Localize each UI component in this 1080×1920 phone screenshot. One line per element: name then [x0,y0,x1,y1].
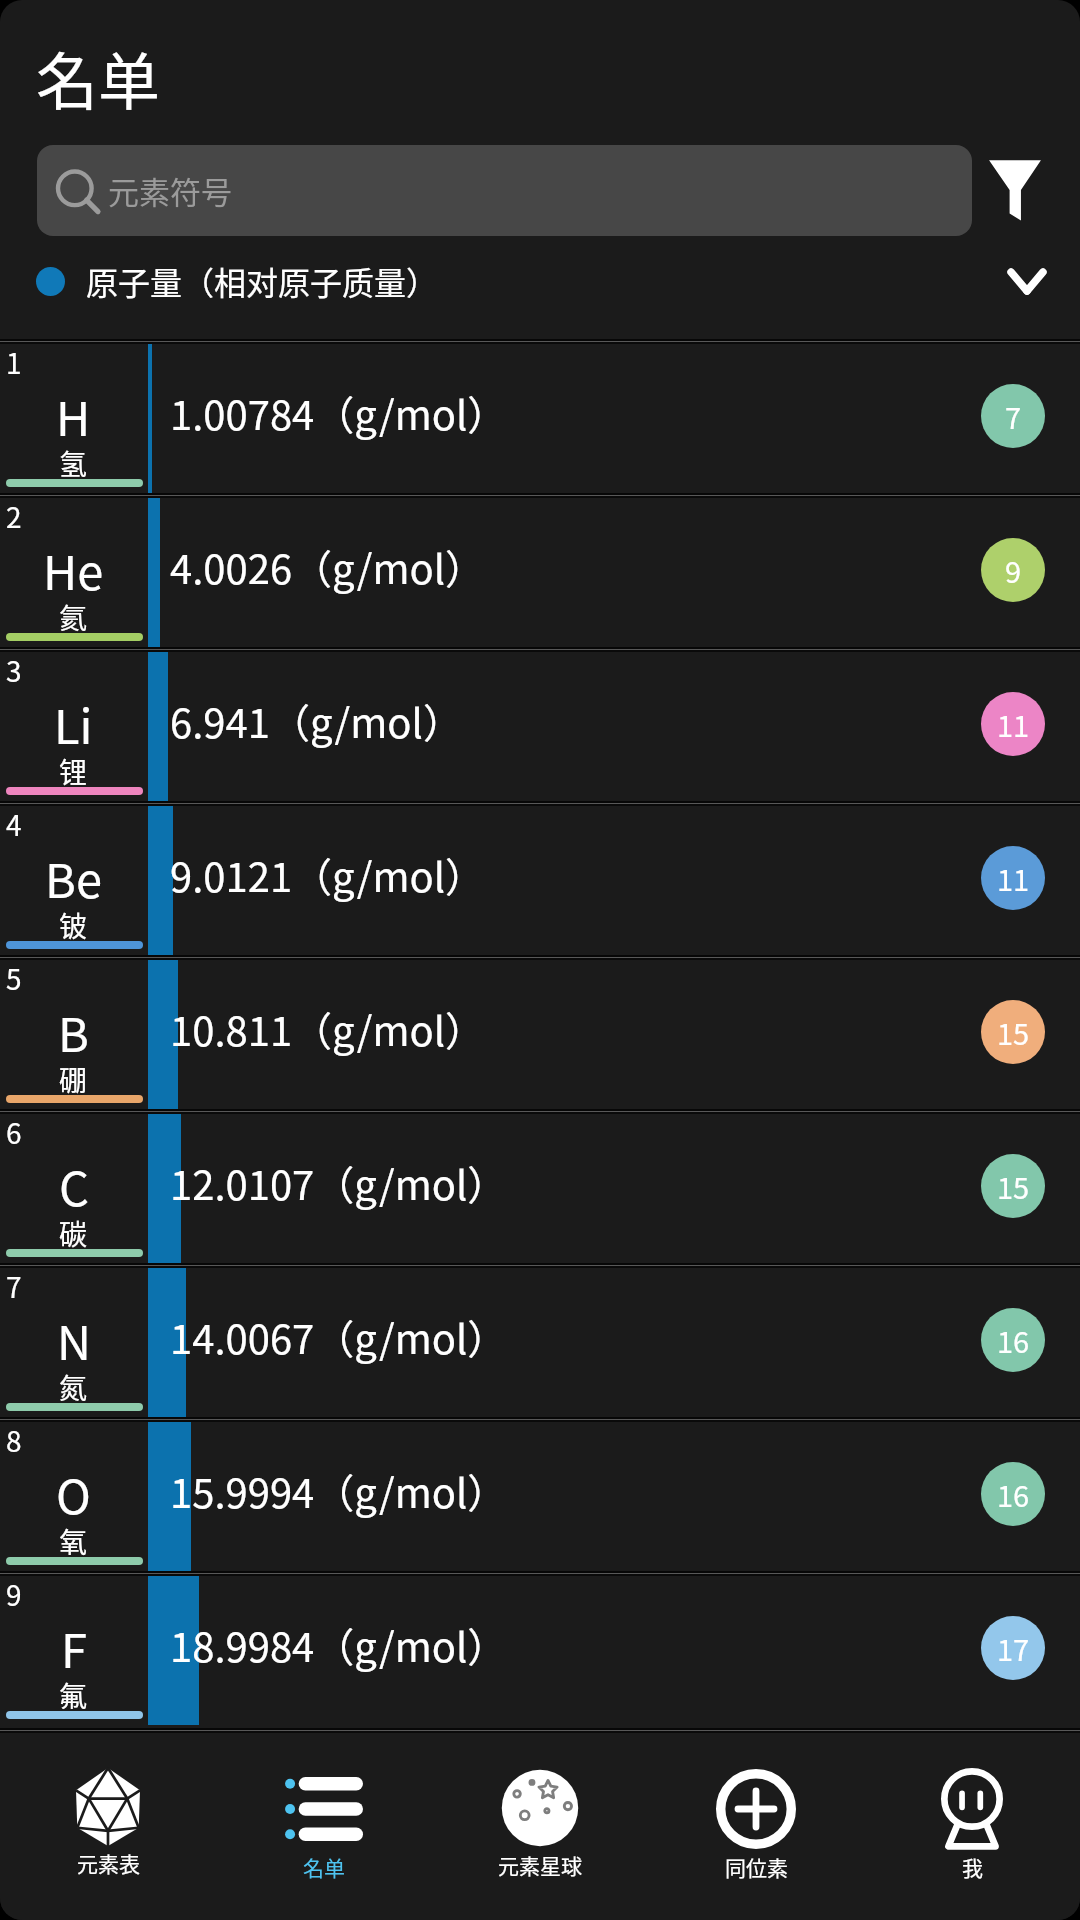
staticText: N [57,1305,91,1373]
button[interactable]: 4 [0,801,1080,955]
staticText: 16 [997,1473,1030,1515]
staticText: 9.0121（g/mol） [170,846,486,904]
button[interactable]: 5 [0,955,1080,1109]
button[interactable]: 9 [0,1571,1080,1725]
staticText: 元素符号 [108,168,232,213]
staticText: 1.00784（g/mol） [170,384,508,442]
staticText: 碳 [59,1213,88,1254]
staticText: Be [45,843,102,911]
staticText: 元素星球 [498,1850,582,1880]
staticText: 原子量（相对原子质量） [86,258,439,304]
staticText: 15 [997,1165,1030,1207]
staticText: 氮 [59,1367,88,1408]
staticText: 2 [6,496,22,537]
staticText: 氦 [59,597,88,638]
staticText: 氧 [59,1521,88,1562]
staticText: 6 [6,1112,22,1153]
button[interactable]: 筛选 [985,155,1045,225]
button[interactable]: 2 [0,493,1080,647]
staticText: 元素表 [77,1848,140,1878]
staticText: B [58,997,89,1065]
button[interactable]: 元素表 [0,1733,216,1920]
button[interactable]: 原子量（相对原子质量） [0,248,1080,314]
staticText: 14.0067（g/mol） [170,1308,508,1366]
button[interactable]: 元素符号 [37,145,972,236]
staticText: 10.811（g/mol） [170,1000,486,1058]
staticText: 名单 [36,33,161,123]
staticText: 16 [997,1319,1030,1361]
staticText: 锂 [59,751,88,792]
staticText: 15.9994（g/mol） [170,1462,508,1520]
button[interactable]: 元素星球 [432,1733,648,1920]
staticText: 名单 [303,1852,345,1882]
button[interactable]: 7 [0,1263,1080,1417]
staticText: 7 [1005,395,1022,437]
staticText: 18.9984（g/mol） [170,1616,508,1674]
staticText: F [61,1613,87,1681]
staticText: 7 [6,1266,22,1307]
staticText: 12.0107（g/mol） [170,1154,508,1212]
staticText: 3 [6,650,22,691]
staticText: C [59,1151,89,1219]
staticText: 11 [997,703,1030,745]
staticText: 硼 [59,1059,88,1100]
staticText: 同位素 [725,1852,788,1882]
staticText: He [43,535,104,603]
staticText: 6.941（g/mol） [170,692,463,750]
button[interactable]: 名单 [216,1733,432,1920]
staticText: 铍 [59,905,88,946]
button[interactable]: 3 [0,647,1080,801]
staticText: 氢 [59,443,88,484]
staticText: 4.0026（g/mol） [170,538,486,596]
staticText: 4 [6,804,22,845]
staticText: 9 [6,1574,22,1615]
staticText: 15 [997,1011,1030,1053]
button[interactable]: 同位素 [648,1733,864,1920]
staticText: 5 [6,958,22,999]
staticText: 氟 [59,1675,88,1716]
staticText: 9 [1005,549,1022,591]
staticText: 17 [997,1627,1030,1669]
button[interactable]: 我 [864,1733,1080,1920]
button[interactable]: 1 [0,339,1080,493]
button[interactable]: 8 [0,1417,1080,1571]
staticText: 1 [6,342,22,383]
staticText: H [56,381,91,449]
staticText: Li [54,689,93,757]
staticText: O [56,1459,91,1527]
button[interactable]: 6 [0,1109,1080,1263]
staticText: 11 [997,857,1030,899]
staticText: 我 [962,1852,983,1882]
staticText: 8 [6,1420,22,1461]
